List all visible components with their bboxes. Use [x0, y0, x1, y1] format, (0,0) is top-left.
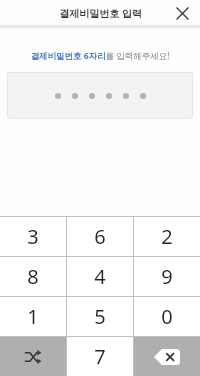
staticText: 2 [161, 223, 173, 250]
staticText: 5 [94, 303, 106, 330]
button[interactable]: 8 [0, 257, 66, 296]
staticText: 3 [27, 223, 39, 250]
button[interactable]: 6 [67, 217, 133, 256]
button[interactable]: 4 [67, 257, 133, 296]
button[interactable]: 3 [0, 217, 66, 256]
button[interactable]: 7 [67, 337, 133, 376]
button[interactable]: Shuffle keypad [0, 337, 66, 376]
button[interactable]: 2 [134, 217, 200, 256]
button[interactable]: Backspace [134, 337, 200, 376]
button[interactable]: 5 [67, 297, 133, 336]
staticText: 0 [161, 303, 173, 330]
staticText: 8 [27, 263, 39, 290]
staticText: 6 [94, 223, 106, 250]
button[interactable]: Close [171, 2, 193, 24]
staticText: 결제비밀번호 입력 [59, 6, 142, 20]
button[interactable]: 0 [134, 297, 200, 336]
staticText: 9 [161, 263, 173, 290]
staticText: 1 [27, 303, 39, 330]
staticText: 4 [94, 263, 106, 290]
button[interactable]: 1 [0, 297, 66, 336]
button[interactable]: 9 [134, 257, 200, 296]
staticText: 결제비밀번호 6자리를 입력해주세요! [0, 50, 200, 62]
staticText: 7 [94, 343, 106, 370]
